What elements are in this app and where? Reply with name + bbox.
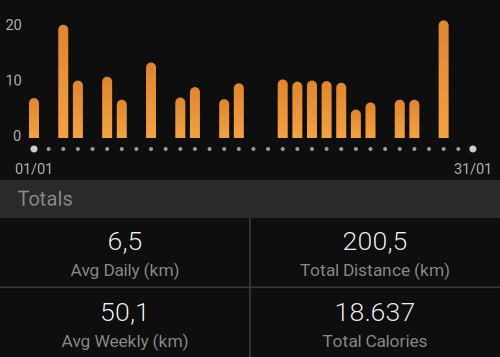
staticText: 50,1 — [100, 296, 150, 328]
staticText: 200,5 — [342, 225, 407, 257]
staticText: 6,5 — [107, 225, 142, 257]
staticText: Totals — [17, 187, 72, 211]
staticText: 20 — [5, 16, 21, 34]
staticText: 31/01 — [454, 160, 492, 178]
staticText: 10 — [5, 72, 21, 89]
staticText: Total Distance (km) — [300, 260, 450, 280]
staticText: Total Calories — [322, 331, 427, 351]
staticText: 0 — [13, 127, 21, 145]
staticText: Avg Daily (km) — [70, 260, 179, 280]
staticText: Avg Weekly (km) — [61, 331, 188, 351]
staticText: 18.637 — [334, 296, 415, 328]
staticText: 01/01 — [15, 160, 53, 178]
